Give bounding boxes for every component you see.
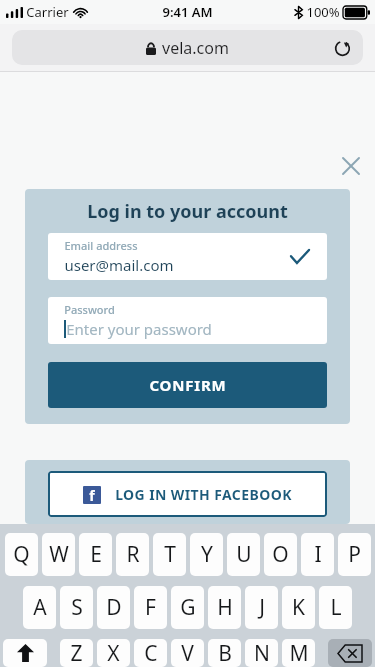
staticText: C	[144, 639, 158, 667]
button[interactable]: Shift	[3, 639, 47, 667]
staticText: vela.com	[162, 37, 229, 59]
button[interactable]: O	[264, 533, 297, 576]
staticText: Carrier	[26, 3, 69, 21]
button[interactable]: H	[208, 586, 241, 629]
staticText: Q	[13, 540, 30, 569]
button[interactable]: vela.com	[12, 30, 363, 65]
staticText: Enter your password	[66, 319, 212, 339]
button[interactable]: A	[23, 586, 56, 629]
button[interactable]: Password	[48, 297, 327, 344]
staticText: A	[33, 593, 47, 622]
button[interactable]: R	[116, 533, 149, 576]
staticText: N	[254, 639, 270, 667]
button[interactable]: J	[245, 586, 278, 629]
button[interactable]: G	[171, 586, 204, 629]
button[interactable]: K	[282, 586, 315, 629]
button[interactable]: F	[134, 586, 167, 629]
staticText: F	[145, 593, 156, 622]
staticText: K	[292, 593, 305, 622]
button[interactable]: C	[134, 639, 167, 667]
staticText: X	[107, 639, 120, 667]
button[interactable]: E	[79, 533, 112, 576]
button[interactable]: U	[227, 533, 260, 576]
button[interactable]: Backspace	[328, 639, 372, 667]
staticText: CONFIRM	[149, 375, 227, 395]
button[interactable]: S	[60, 586, 93, 629]
staticText: LOG IN WITH FACEBOOK	[115, 485, 292, 504]
button[interactable]: D	[97, 586, 130, 629]
button[interactable]: Email address	[48, 233, 327, 280]
staticText: T	[164, 540, 176, 569]
staticText: f	[89, 486, 95, 504]
button[interactable]: CONFIRM	[48, 362, 327, 408]
staticText: E	[90, 540, 102, 569]
button[interactable]: Y	[190, 533, 223, 576]
staticText: Log in to your account	[87, 199, 288, 224]
staticText: G	[180, 593, 196, 622]
button[interactable]: X	[97, 639, 130, 667]
button[interactable]: Close	[339, 154, 363, 178]
staticText: U	[236, 540, 252, 569]
staticText: S	[71, 593, 83, 622]
staticText: V	[181, 639, 194, 667]
staticText: I	[314, 540, 322, 569]
staticText: 9:41 AM	[162, 3, 213, 21]
staticText: 100%	[306, 3, 340, 21]
button[interactable]: L	[319, 586, 352, 629]
button[interactable]: I	[301, 533, 334, 576]
staticText: O	[272, 540, 289, 569]
staticText: W	[49, 540, 69, 569]
staticText: J	[259, 593, 265, 622]
button[interactable]: f	[48, 471, 327, 517]
staticText: Email address	[64, 238, 138, 253]
button[interactable]: V	[171, 639, 204, 667]
staticText: L	[330, 593, 342, 622]
staticText: P	[348, 540, 361, 569]
button[interactable]: P	[338, 533, 371, 576]
staticText: R	[126, 540, 140, 569]
staticText: D	[106, 593, 122, 622]
staticText: Y	[201, 540, 213, 569]
staticText: B	[218, 639, 232, 667]
button[interactable]: B	[208, 639, 241, 667]
button[interactable]: Reload	[327, 33, 357, 63]
staticText: Z	[70, 639, 83, 667]
staticText: H	[217, 593, 233, 622]
button[interactable]: N	[245, 639, 278, 667]
button[interactable]: W	[42, 533, 75, 576]
button[interactable]: Q	[5, 533, 38, 576]
button[interactable]: T	[153, 533, 186, 576]
staticText: user@mail.com	[64, 255, 174, 275]
button[interactable]: M	[282, 639, 315, 667]
staticText: M	[289, 639, 309, 667]
staticText: Password	[64, 302, 115, 317]
button[interactable]: Z	[60, 639, 93, 667]
